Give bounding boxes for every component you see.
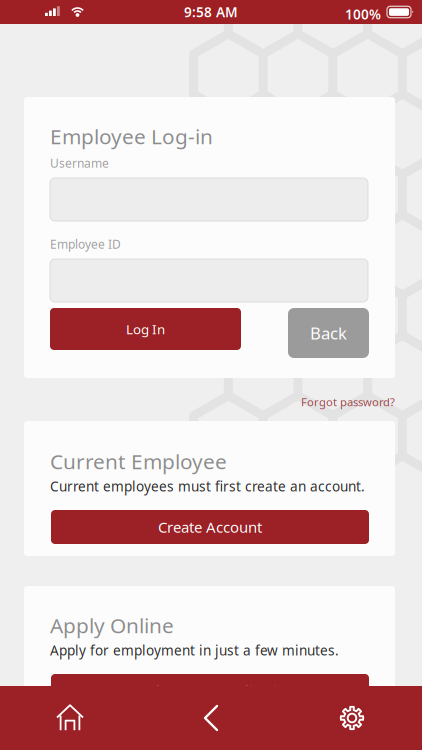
button[interactable]: Back — [288, 308, 369, 358]
staticText: Forgot password? — [301, 394, 395, 410]
staticText: Apply for employment in just a few minut… — [50, 641, 339, 659]
staticText: Log In — [126, 320, 165, 338]
staticText: Current Employee — [50, 447, 227, 475]
staticText: Employee Log-in — [50, 122, 213, 150]
button[interactable]: Back — [141, 686, 281, 750]
staticText: 9:58 AM — [184, 3, 238, 21]
button[interactable]: Log In — [50, 308, 241, 350]
button[interactable]: Employment Application — [51, 674, 369, 708]
staticText: 100% — [345, 5, 381, 23]
button[interactable]: Forgot password? — [285, 394, 395, 410]
staticText: Apply Online — [50, 611, 174, 639]
button[interactable]: Home — [0, 686, 140, 750]
button[interactable]: Settings — [282, 686, 422, 750]
button[interactable]: Create Account — [51, 510, 369, 544]
staticText: Create Account — [158, 517, 262, 537]
staticText: Employee ID — [50, 236, 121, 252]
staticText: Current employees must first create an a… — [50, 477, 365, 495]
staticText: Back — [310, 322, 347, 344]
staticText: Username — [50, 155, 109, 171]
